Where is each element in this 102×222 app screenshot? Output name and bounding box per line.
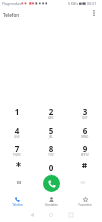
staticText: Flugmodus [2, 1, 21, 6]
staticText: WXYZ [69, 153, 101, 157]
staticText: PQRS [1, 153, 33, 157]
staticText: ABC [35, 116, 67, 120]
button[interactable]: Home [45, 209, 57, 221]
staticText: 2 [35, 106, 67, 117]
button[interactable]: 3 [69, 103, 101, 121]
staticText: Telefon [12, 203, 23, 207]
button[interactable]: 9 [69, 140, 101, 158]
staticText: + [35, 172, 67, 176]
button[interactable]: Kontakte [34, 193, 68, 211]
staticText: JKL [35, 135, 67, 139]
staticText: 7 [1, 143, 33, 154]
button[interactable]: 4 [1, 122, 33, 140]
button[interactable]: 2 [35, 103, 67, 121]
button[interactable]: Telefon [0, 193, 34, 211]
staticText: Kontakte [45, 203, 58, 207]
staticText: 8 [35, 143, 67, 154]
staticText: 3 [69, 106, 101, 117]
staticText: 9 [69, 143, 101, 154]
staticText: 5 [35, 125, 67, 136]
staticText: DEF [69, 116, 101, 120]
staticText: 1 [1, 106, 33, 117]
button[interactable]: More options [88, 7, 100, 19]
button[interactable] [69, 159, 101, 177]
button[interactable]: 8 [35, 140, 67, 158]
staticText: 4 [1, 125, 33, 136]
staticText: MNO [69, 135, 101, 139]
button[interactable]: 7 [1, 140, 33, 158]
button[interactable]: Recents [65, 209, 77, 221]
button[interactable]: 6 [69, 122, 101, 140]
button[interactable]: 5 [35, 122, 67, 140]
staticText: 0 KB/s [68, 1, 79, 6]
button[interactable]: Back [26, 209, 38, 221]
button[interactable] [1, 159, 33, 177]
staticText: 0 [35, 162, 67, 173]
staticText: Favoriten [78, 203, 92, 207]
button[interactable]: Dial pad options [13, 177, 25, 189]
button[interactable]: Backspace [76, 176, 88, 188]
button[interactable]: Favoriten [68, 193, 102, 211]
staticText: Telefon [3, 12, 20, 18]
button[interactable]: 0 [35, 159, 67, 177]
button[interactable]: 1 [1, 103, 33, 121]
button[interactable]: Call [43, 175, 60, 192]
staticText: GHI [1, 135, 33, 139]
staticText: 00:31 [87, 1, 97, 6]
staticText: TUV [35, 153, 67, 157]
staticText: 6 [69, 125, 101, 136]
